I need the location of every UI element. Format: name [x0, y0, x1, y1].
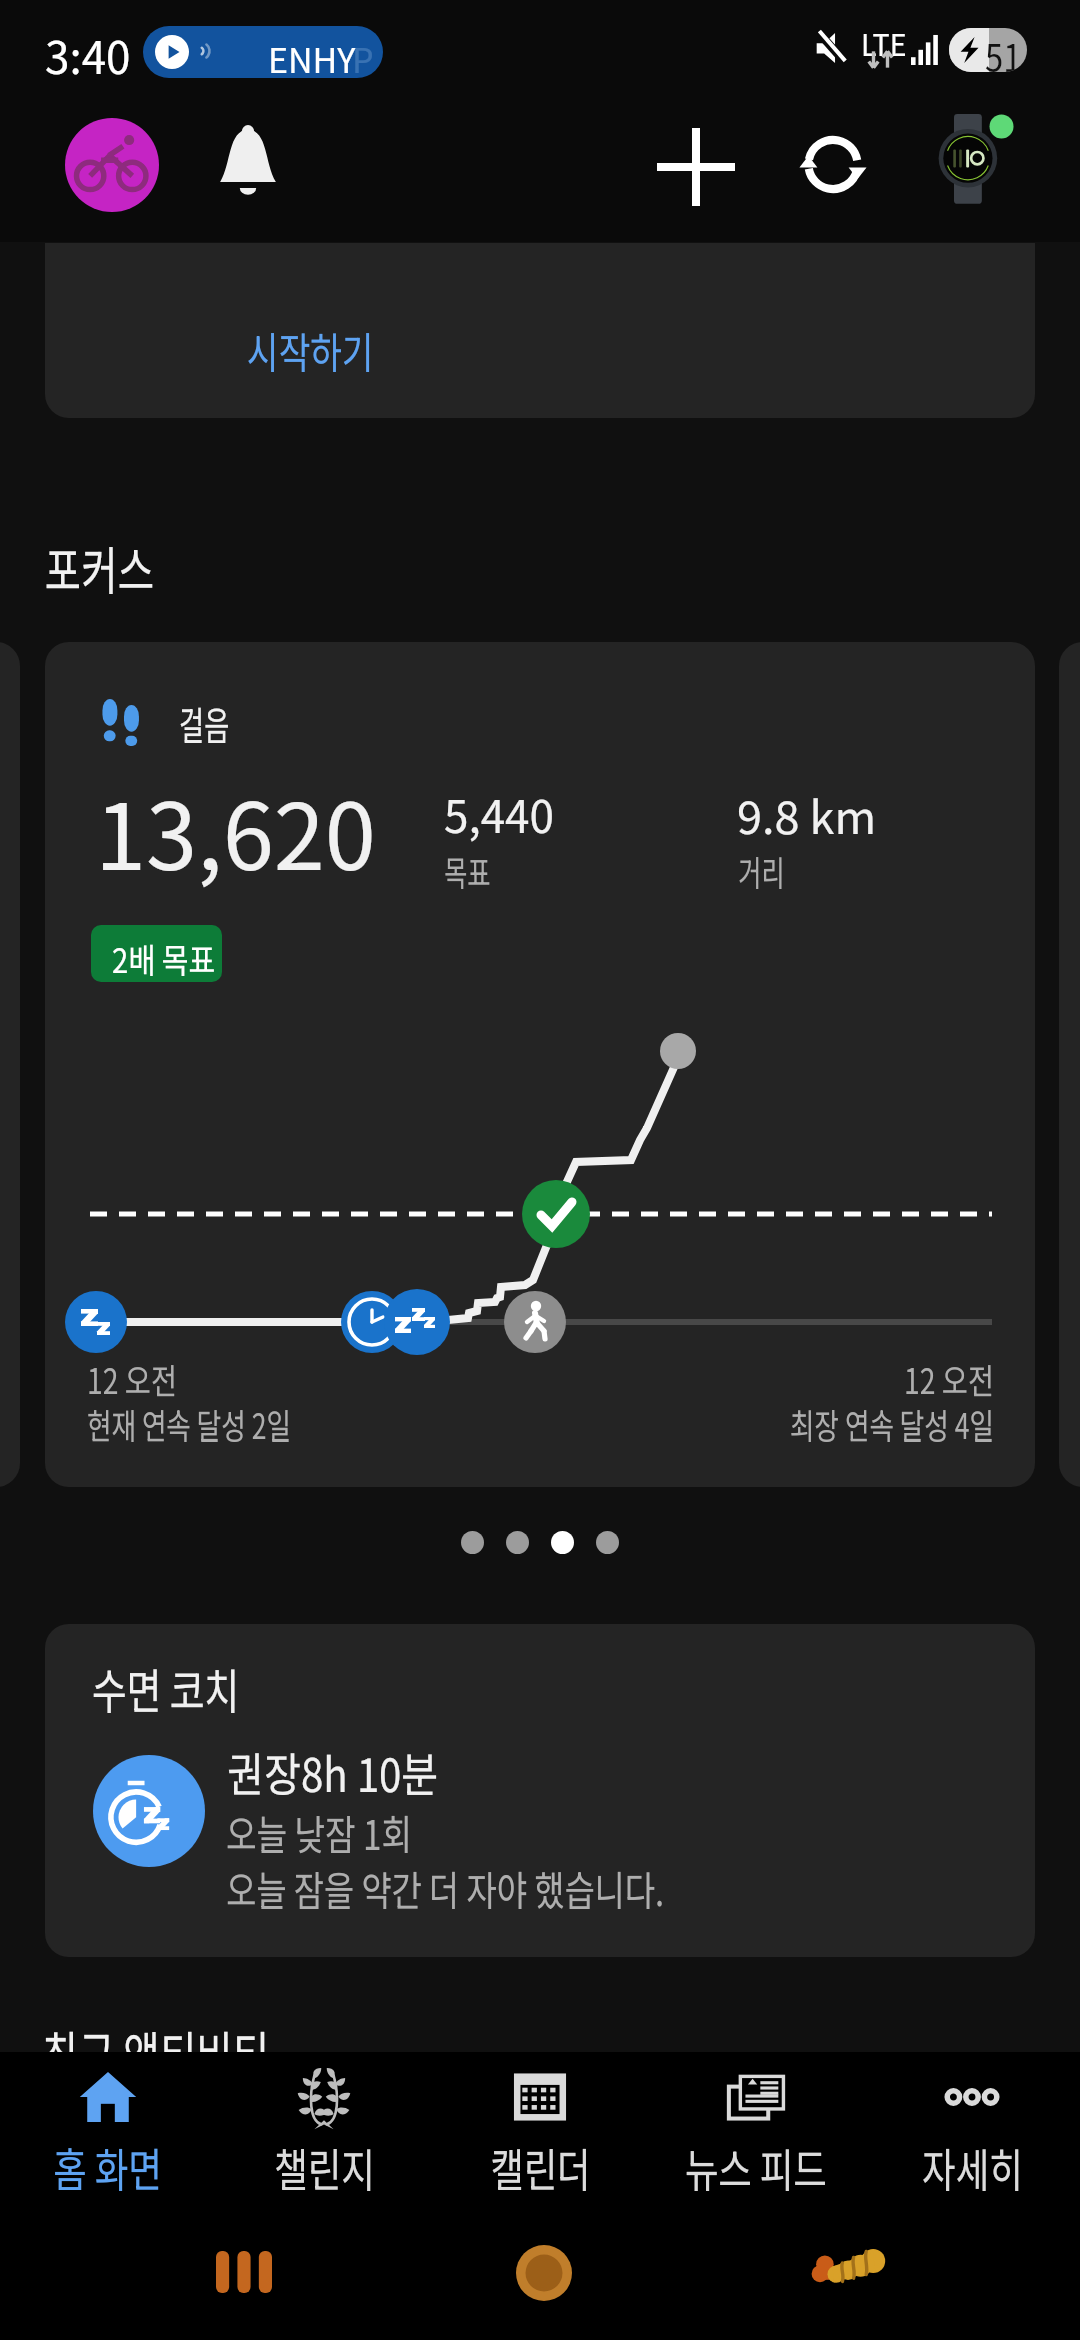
staticText: 포커스 [45, 530, 154, 605]
staticText: 최장 연속 달성 4일 [273, 1398, 994, 1449]
staticText: 12 오전 [87, 1353, 178, 1404]
staticText: 걸음 [179, 695, 229, 751]
button[interactable]: 챌린지 [216, 2052, 432, 2210]
button[interactable]: Back [720, 2210, 1080, 2340]
button[interactable]: 캘린더 [432, 2052, 648, 2210]
staticText: ENHY [268, 34, 356, 78]
staticText: 홈 화면 [53, 2134, 162, 2201]
staticText: 최근 액티비티 [42, 2015, 269, 2090]
staticText: 13,620 [95, 763, 376, 896]
button[interactable]: Media [143, 26, 383, 78]
button[interactable]: Home [360, 2210, 720, 2340]
staticText: 오늘 잠을 약간 더 자야 했습니다. [226, 1858, 664, 1917]
staticText: 챌린지 [274, 2134, 375, 2201]
staticText: 뉴스 피드 [685, 2134, 827, 2201]
staticText: 5,440 [444, 782, 554, 846]
staticText: 시작하기 [247, 319, 374, 381]
button[interactable]: Recent apps [0, 2210, 360, 2340]
staticText: 거리 [738, 845, 785, 896]
button[interactable]: Profile [65, 118, 159, 212]
staticText: 51 [985, 28, 1022, 72]
button[interactable]: Device [930, 102, 1026, 198]
button[interactable]: 2배 목표 [91, 925, 222, 982]
staticText: 2배 목표 [112, 934, 216, 982]
staticText: 3:40 [45, 23, 131, 87]
other: Sound off [816, 31, 850, 65]
button[interactable]: 홈 화면 [0, 2052, 216, 2210]
staticText: 자세히 [922, 2134, 1023, 2201]
staticText: P [352, 34, 374, 78]
staticText: 수면 코치 [92, 1653, 240, 1723]
button[interactable]: 자세히 [864, 2052, 1080, 2210]
button[interactable]: Sync [785, 118, 881, 214]
staticText: 목표 [444, 845, 491, 896]
button[interactable]: 걸음 [45, 642, 1035, 1487]
staticText: 9.8 km [737, 782, 877, 847]
staticText: LTE [861, 21, 907, 64]
button[interactable]: Add [645, 116, 747, 218]
button[interactable]: 시작하기 [45, 243, 1035, 418]
staticText: 12 오전 [225, 1353, 994, 1404]
button[interactable]: Notifications [198, 112, 298, 212]
button[interactable]: 뉴스 피드 [648, 2052, 864, 2210]
staticText: 캘린더 [490, 2134, 591, 2201]
button[interactable]: 수면 코치 [45, 1624, 1035, 1957]
staticText: 현재 연속 달성 2일 [87, 1398, 291, 1449]
staticText: 권장8h 10분 [227, 1737, 439, 1805]
staticText: 오늘 낮잠 1회 [226, 1802, 412, 1861]
